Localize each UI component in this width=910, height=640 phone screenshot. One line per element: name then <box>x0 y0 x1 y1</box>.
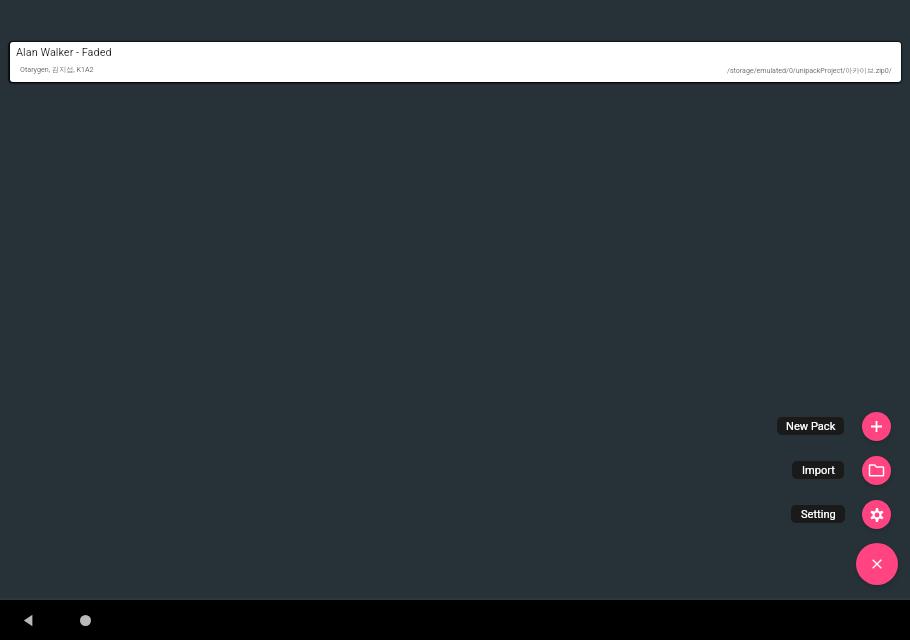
staticText: /storage/emulated/0/unipackProject/아카이브.… <box>727 66 892 75</box>
button[interactable]: Alan Walker - Faded <box>10 42 901 82</box>
staticText: New Pack <box>786 420 836 433</box>
button[interactable]: Setting <box>791 505 845 523</box>
button[interactable]: New Pack <box>862 412 891 441</box>
button[interactable]: Home <box>69 604 101 636</box>
button[interactable]: Import <box>862 456 891 485</box>
staticText: Alan Walker - Faded <box>16 46 112 59</box>
button[interactable]: Setting <box>862 500 891 529</box>
staticText: Setting <box>801 508 836 521</box>
staticText: Import <box>802 464 835 477</box>
button[interactable]: Close menu <box>856 543 898 585</box>
button[interactable]: Import <box>792 461 844 479</box>
button[interactable]: New Pack <box>777 417 844 435</box>
button[interactable]: Back <box>12 604 44 636</box>
staticText: Otarygen, 김지섭, K1A2 <box>20 65 94 74</box>
